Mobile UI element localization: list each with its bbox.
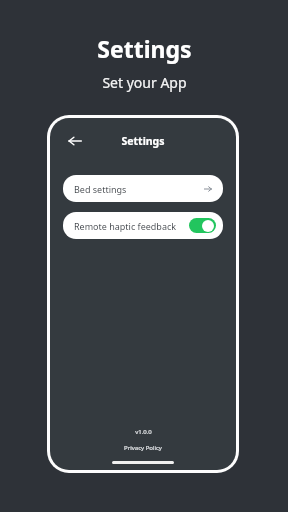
staticText: Privacy Policy <box>124 444 162 452</box>
button[interactable]: Privacy Policy <box>120 443 166 453</box>
staticText: Remote haptic feedback <box>74 220 177 232</box>
button[interactable]: Remote haptic feedback <box>63 212 223 239</box>
staticText: v1.0.0 <box>135 428 152 436</box>
staticText: Set your App <box>102 73 187 92</box>
button[interactable]: Bed settings <box>63 175 223 202</box>
button[interactable]: Remote haptic feedback toggle <box>189 218 216 233</box>
staticText: Settings <box>97 33 192 64</box>
staticText: Bed settings <box>74 183 127 195</box>
button[interactable]: Back <box>64 130 86 152</box>
staticText: Settings <box>121 134 165 148</box>
